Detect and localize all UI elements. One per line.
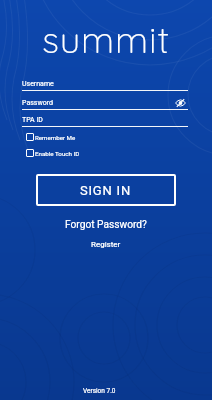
staticText: Forgot Password? [65, 219, 147, 231]
button[interactable]: Remember Me [26, 133, 76, 141]
staticText: Username [22, 80, 54, 88]
staticText: Enable Touch ID [35, 150, 80, 157]
button[interactable]: SIGN IN [36, 174, 176, 206]
staticText: Version 7.0 [83, 387, 116, 395]
staticText: Register [91, 240, 121, 249]
button[interactable]: Password [22, 99, 188, 110]
button[interactable]: TPA ID [22, 116, 188, 127]
button[interactable] [175, 99, 186, 107]
button[interactable]: Username [22, 80, 188, 91]
staticText: TPA ID [22, 116, 43, 124]
staticText: summit [42, 16, 170, 62]
staticText: Password [22, 99, 53, 107]
staticText: SIGN IN [80, 183, 132, 198]
staticText: Remember Me [35, 134, 76, 141]
button[interactable]: Enable Touch ID [26, 149, 80, 157]
button[interactable]: Register [86, 238, 126, 251]
button[interactable]: Forgot Password? [60, 217, 152, 233]
